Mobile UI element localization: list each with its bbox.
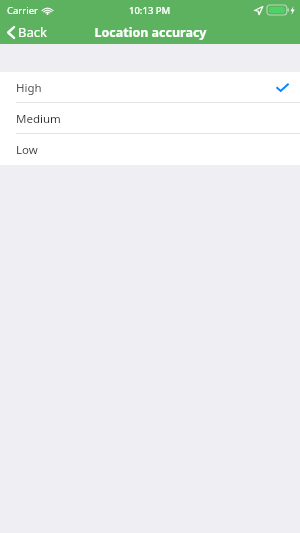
button[interactable]: Medium [0,103,300,134]
staticText: Location accuracy [94,24,207,41]
button[interactable]: High [0,72,300,103]
button[interactable]: Low [0,134,300,165]
staticText: 10:13 PM [129,4,171,17]
staticText: Medium [16,111,61,127]
staticText: Carrier [7,4,38,17]
staticText: Low [16,142,38,158]
staticText: Back [18,23,47,41]
button[interactable]: Back [0,20,55,44]
staticText: High [16,80,42,96]
other: Back [7,26,15,39]
